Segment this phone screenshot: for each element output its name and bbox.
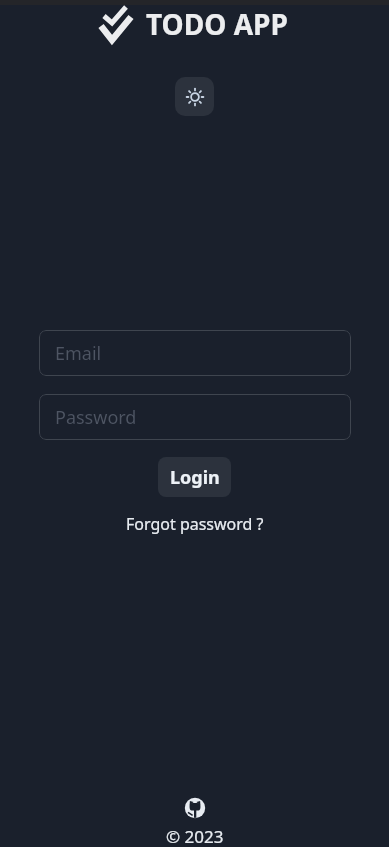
button[interactable]: Login	[158, 457, 231, 497]
staticText: © 2023	[166, 825, 224, 847]
button[interactable]: Forgot password ?	[126, 513, 264, 535]
staticText: Password	[55, 405, 137, 430]
button[interactable]	[175, 77, 214, 116]
button[interactable]: Password	[39, 394, 351, 440]
staticText: TODO APP	[146, 5, 288, 43]
staticText: Login	[170, 465, 220, 490]
staticText: Email	[55, 341, 102, 366]
button[interactable]	[184, 797, 206, 819]
button[interactable]: Email	[39, 330, 351, 376]
